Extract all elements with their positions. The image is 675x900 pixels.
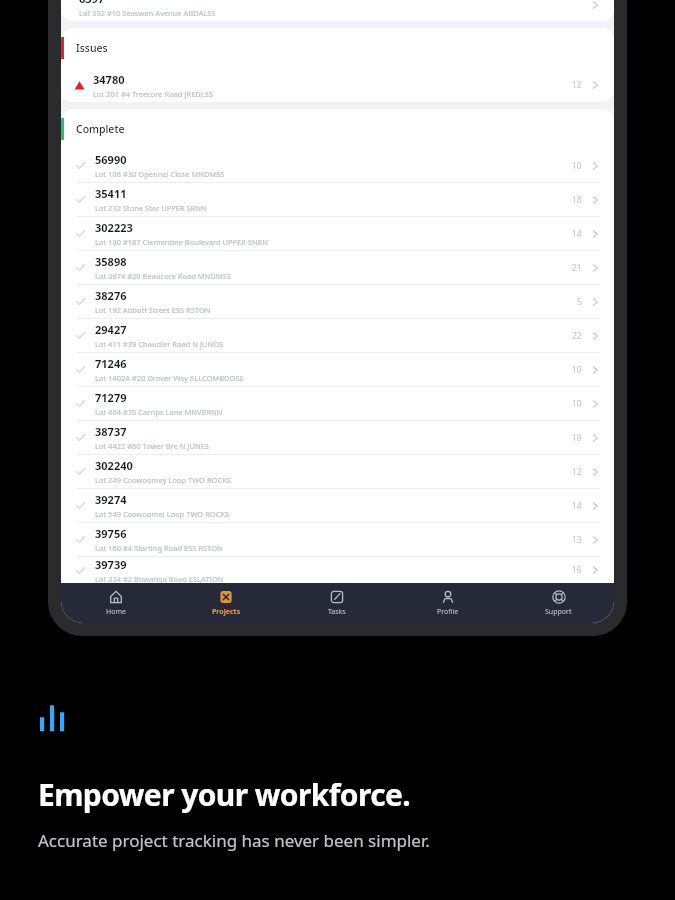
button[interactable]: 71279 <box>61 387 614 420</box>
staticText: Lot 302 #10 Seaswan Avenue ABDALSS <box>79 8 216 18</box>
staticText: Lot 108 #30 Opennei Close MNDMSS <box>95 169 225 179</box>
staticText: Tasks <box>328 607 346 617</box>
staticText: 39756 <box>95 526 127 541</box>
staticText: Lot 160 #4 Starting Road ESS RSTON <box>95 543 223 553</box>
staticText: 39739 <box>95 557 127 572</box>
staticText: Projects <box>212 607 241 617</box>
staticText: 35411 <box>95 186 127 201</box>
staticText: Profile <box>437 607 459 617</box>
button[interactable]: 56990 <box>61 149 614 182</box>
staticText: 56990 <box>95 152 127 167</box>
staticText: 29427 <box>95 322 127 337</box>
staticText: 14 <box>572 228 582 240</box>
staticText: 16 <box>572 564 582 576</box>
staticText: 34780 <box>93 72 125 87</box>
staticText: Lot 232 Stone Star UPPER SRNN <box>95 203 207 213</box>
button[interactable]: Home <box>61 583 171 623</box>
staticText: 18 <box>572 194 582 206</box>
staticText: Lot 2074 #20 Beaucore Road MNDMSS <box>95 271 231 281</box>
staticText: 6397 <box>79 0 105 6</box>
staticText: Lot 411 #39 Chaudier Road N JUNOS <box>95 339 224 349</box>
staticText: Lot 1402A #20 Grover Way SLLCOMBDOSS <box>95 373 244 383</box>
button[interactable]: 71246 <box>61 353 614 386</box>
button[interactable]: 39756 <box>61 523 614 556</box>
staticText: Empower your workforce. <box>38 774 411 815</box>
staticText: Home <box>106 607 126 617</box>
staticText: Lot 464 #70 Carrips Lane MNVBRNN <box>95 407 223 417</box>
staticText: Lot 549 Coowoomel Loop TWO ROCKS <box>95 509 230 519</box>
staticText: 39274 <box>95 492 127 507</box>
staticText: 21 <box>572 262 582 274</box>
button[interactable]: Support <box>503 583 614 623</box>
staticText: 71246 <box>95 356 127 371</box>
staticText: 10 <box>572 398 582 410</box>
button[interactable]: Tasks <box>281 583 392 623</box>
staticText: 38737 <box>95 424 127 439</box>
staticText: 35898 <box>95 254 127 269</box>
staticText: 12 <box>572 79 582 91</box>
staticText: Complete <box>76 122 125 136</box>
staticText: 302240 <box>95 458 133 473</box>
staticText: Accurate project tracking has never been… <box>38 829 430 852</box>
button[interactable]: Profile <box>392 583 503 623</box>
staticText: 14 <box>572 500 582 512</box>
staticText: 13 <box>572 534 582 546</box>
button[interactable]: Projects <box>171 583 281 623</box>
staticText: Lot 334 #2 Bowanga Road ESLATION <box>95 574 224 583</box>
button[interactable]: 39274 <box>61 489 614 522</box>
button[interactable]: 302223 <box>61 217 614 250</box>
staticText: Lot 249 Coowoomey Loop TWO ROCKS <box>95 475 231 485</box>
button[interactable]: 29427 <box>61 319 614 352</box>
button[interactable]: 35411 <box>61 183 614 216</box>
staticText: Lot 4422 #60 Tower Bre N JUNES <box>95 441 209 451</box>
button[interactable]: 38737 <box>61 421 614 454</box>
staticText: 19 <box>572 432 582 444</box>
staticText: 10 <box>572 160 582 172</box>
button[interactable]: 34780 <box>61 68 614 102</box>
button[interactable]: 39739 <box>61 557 614 583</box>
staticText: 10 <box>572 364 582 376</box>
staticText: 71279 <box>95 390 127 405</box>
staticText: Support <box>545 607 572 617</box>
staticText: 22 <box>572 330 582 342</box>
staticText: Lot 180 #187 Clementine Boulevard UPPER … <box>95 237 268 247</box>
staticText: 12 <box>572 466 582 478</box>
staticText: 38276 <box>95 288 127 303</box>
button[interactable]: 6397 <box>61 0 614 21</box>
staticText: Lot 201 #4 Treecore Road JREDLSS <box>93 89 213 99</box>
staticText: Issues <box>76 41 108 55</box>
staticText: 302223 <box>95 220 133 235</box>
button[interactable]: 302240 <box>61 455 614 488</box>
staticText: Lot 192 Abbott Street ESS RSTON <box>95 305 211 315</box>
staticText: 5 <box>577 296 582 308</box>
button[interactable]: 38276 <box>61 285 614 318</box>
button[interactable]: 35898 <box>61 251 614 284</box>
